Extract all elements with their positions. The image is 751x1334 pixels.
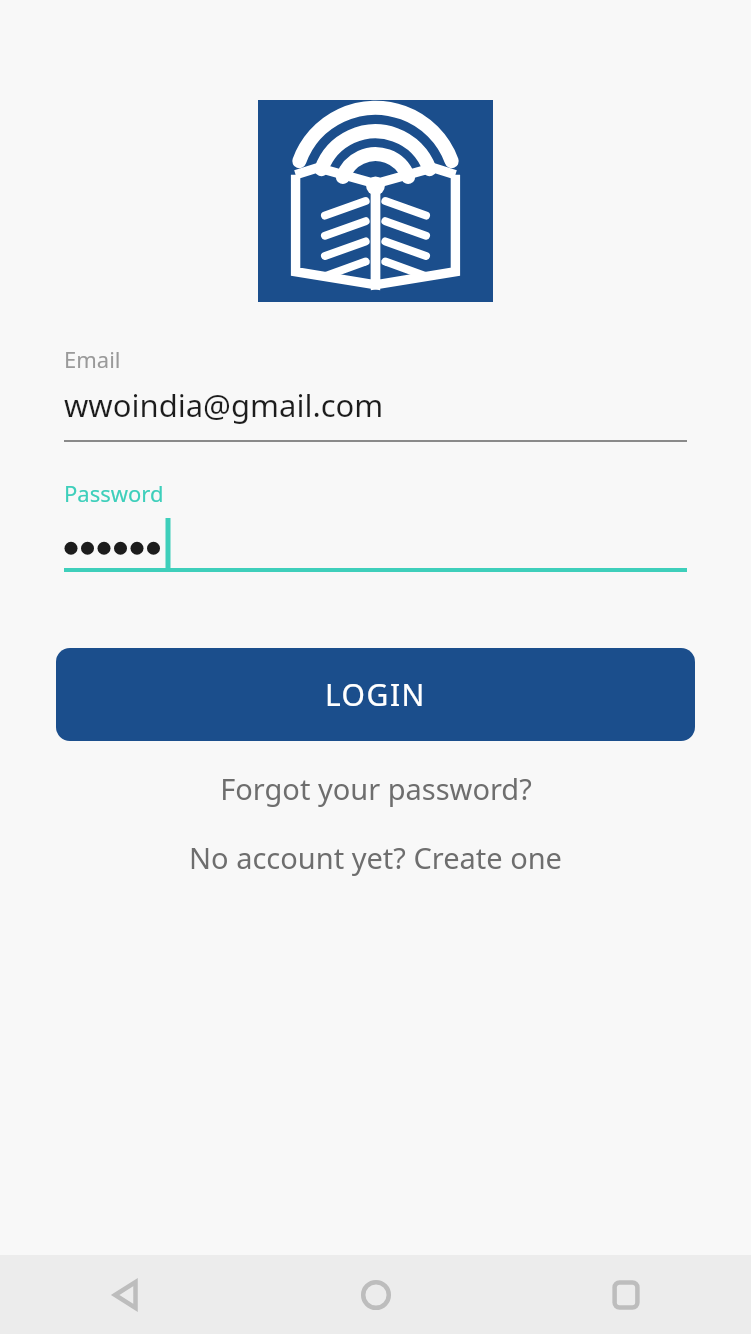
staticText: wwoindia@gmail.com bbox=[64, 384, 384, 426]
staticText: LOGIN bbox=[325, 674, 426, 715]
button[interactable]: Email bbox=[64, 344, 687, 442]
button[interactable]: Back bbox=[0, 1255, 251, 1334]
button[interactable]: Recent apps bbox=[501, 1255, 751, 1334]
button[interactable]: No account yet? Create one bbox=[173, 830, 578, 885]
button[interactable]: LOGIN bbox=[56, 648, 695, 741]
staticText: Forgot your password? bbox=[220, 769, 532, 808]
button[interactable]: Password bbox=[64, 478, 687, 572]
staticText: Email bbox=[64, 344, 121, 374]
button[interactable]: Forgot your password? bbox=[204, 761, 548, 816]
button[interactable]: Home bbox=[251, 1255, 501, 1334]
staticText: Password bbox=[64, 478, 164, 508]
staticText: No account yet? Create one bbox=[189, 838, 562, 877]
